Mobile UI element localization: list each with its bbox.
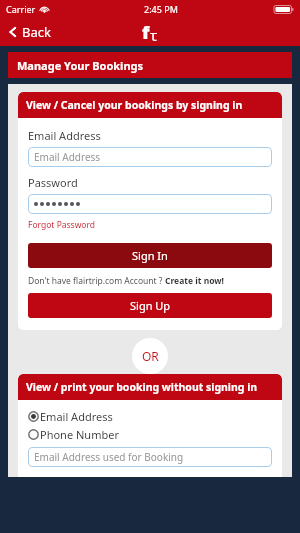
staticText: Forgot Password bbox=[28, 219, 96, 231]
button[interactable]: Don't have flairtrip.com Account ? bbox=[28, 275, 225, 287]
button[interactable]: Email Address bbox=[28, 408, 272, 424]
staticText: Phone Number bbox=[40, 427, 119, 442]
staticText: View / Cancel your bookings by signing i… bbox=[26, 98, 243, 112]
button[interactable] bbox=[28, 194, 272, 214]
staticText: Manage Your Bookings bbox=[17, 58, 144, 73]
staticText: OR bbox=[142, 348, 159, 364]
staticText: Email Address bbox=[28, 128, 101, 143]
button[interactable]: Sign Up bbox=[28, 293, 272, 318]
staticText: Password bbox=[28, 175, 78, 190]
staticText: Carrier bbox=[6, 3, 36, 15]
staticText: Create it now! bbox=[165, 275, 225, 287]
button[interactable]: Forgot Password bbox=[28, 219, 96, 231]
button[interactable]: Sign In bbox=[28, 243, 272, 268]
button[interactable]: Email Address bbox=[28, 147, 272, 167]
staticText: 2:45 PM bbox=[144, 3, 178, 15]
button[interactable]: Phone Number bbox=[28, 426, 272, 442]
staticText: Email Address used for Booking bbox=[34, 450, 184, 464]
staticText: Email Address bbox=[40, 409, 113, 424]
staticText: Sign Up bbox=[130, 298, 171, 313]
staticText: Sign In bbox=[132, 248, 168, 263]
staticText: Email Address bbox=[34, 150, 101, 164]
staticText: Back bbox=[22, 23, 51, 41]
button[interactable]: Back bbox=[0, 23, 59, 41]
staticText: τ bbox=[150, 25, 158, 45]
button[interactable]: Email Address used for Booking bbox=[28, 447, 272, 467]
staticText: Don't have flairtrip.com Account ? bbox=[28, 275, 165, 287]
staticText: f bbox=[142, 20, 150, 45]
staticText: View / print your booking without signin… bbox=[26, 380, 258, 394]
